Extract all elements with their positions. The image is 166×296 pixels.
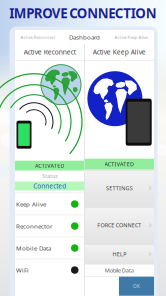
staticText: FORCE CONNECT (97, 221, 141, 229)
staticText: Dashboard (69, 33, 100, 41)
staticText: Connected (33, 182, 66, 190)
staticText: ACTIVATED (105, 161, 134, 168)
button[interactable]: HELP (84, 244, 154, 265)
button[interactable] (84, 277, 119, 296)
button[interactable]: OK (119, 277, 154, 296)
staticText: IMPROVE CONNECTION (9, 4, 157, 22)
staticText: WiFi (16, 266, 29, 274)
staticText: SETTINGS (106, 184, 133, 192)
button[interactable]: Mobile Data (15, 237, 84, 259)
button[interactable]: Dashboard (61, 30, 108, 44)
button[interactable]: Reconnector (15, 215, 84, 237)
button[interactable]: SETTINGS (84, 170, 154, 207)
staticText: Mobile Data (16, 244, 51, 252)
staticText: Active Keep Alive (114, 34, 147, 40)
staticText: Keep Alive (16, 200, 46, 208)
button[interactable]: FORCE CONNECT (84, 207, 154, 244)
staticText: Mobile Data (105, 266, 134, 274)
staticText: HELP (112, 250, 126, 258)
button[interactable]: WiFi (15, 259, 84, 281)
button[interactable]: Active Reconnect (15, 30, 61, 44)
staticText: Status (42, 173, 57, 179)
staticText: ACTIVATED (35, 162, 64, 169)
staticText: OK (133, 283, 140, 289)
staticText: Active Reconnect (24, 47, 76, 57)
staticText: Reconnector (16, 222, 53, 230)
button[interactable]: Active Keep Alive (108, 30, 154, 44)
staticText: Active Keep Alive (93, 47, 146, 57)
staticText: Active Reconnect (20, 34, 55, 40)
button[interactable]: Keep Alive (15, 193, 84, 215)
